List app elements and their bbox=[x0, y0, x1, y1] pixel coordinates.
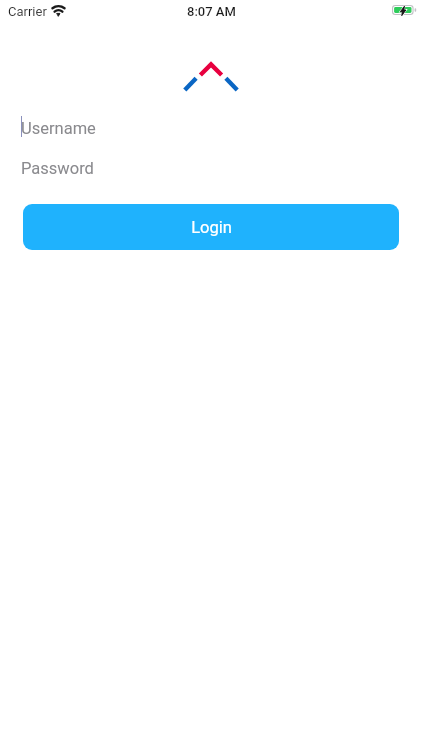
other: Wi-Fi bbox=[51, 5, 66, 17]
button[interactable]: Password bbox=[0, 150, 422, 190]
button[interactable]: Username bbox=[0, 110, 422, 150]
staticText: Password bbox=[21, 159, 94, 178]
staticText: Carrier bbox=[8, 4, 47, 19]
button[interactable]: Login bbox=[23, 204, 399, 250]
other: Battery charging bbox=[392, 3, 416, 17]
staticText: Username bbox=[21, 119, 96, 138]
staticText: Login bbox=[191, 218, 232, 237]
other: App logo bbox=[183, 60, 239, 94]
staticText: 8:07 AM bbox=[187, 4, 236, 19]
